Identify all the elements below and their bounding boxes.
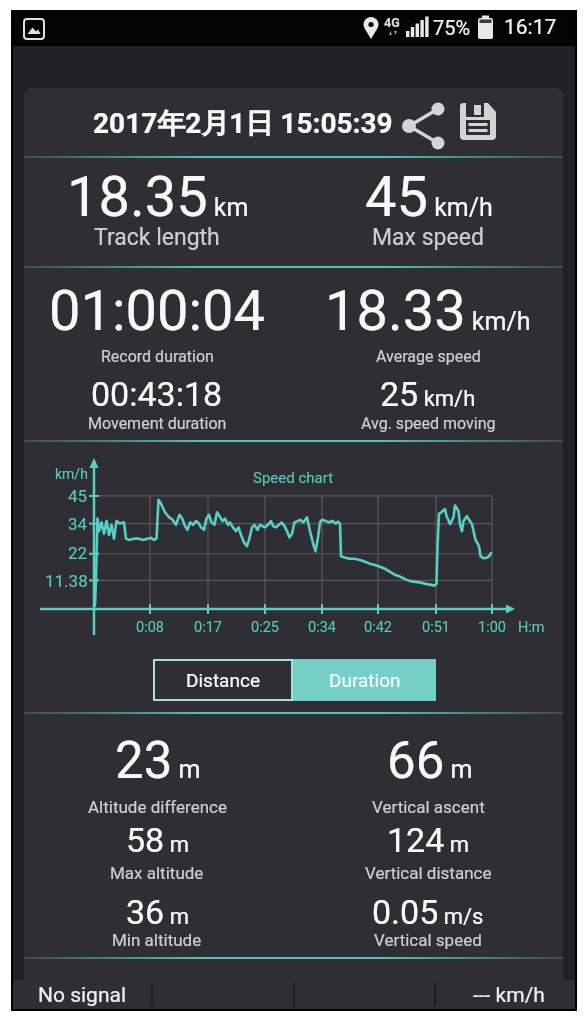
staticText: Distance <box>186 669 260 691</box>
staticText: 00:43:18 <box>91 374 223 414</box>
staticText: H:m <box>518 619 545 636</box>
staticText: --- km/h <box>473 983 545 1008</box>
staticText: 0:08 <box>136 619 164 636</box>
staticText: 1:00 <box>478 619 506 636</box>
staticText: Vertical distance <box>365 863 492 883</box>
staticText: 45 km/h <box>365 164 493 230</box>
staticText: Avg. speed moving <box>361 414 496 433</box>
staticText: 25 km/h <box>380 374 476 414</box>
staticText: 16:17 <box>504 15 557 40</box>
staticText: 0.05 m/s <box>372 892 484 932</box>
staticText: 0:34 <box>308 619 336 636</box>
staticText: 75% <box>433 16 471 39</box>
staticText: 34 <box>68 514 88 534</box>
staticText: km/h <box>55 466 88 482</box>
staticText: 2017年2月1日 15:05:39 <box>93 106 393 141</box>
staticText: No signal <box>38 983 127 1008</box>
staticText: 11.38 <box>45 571 88 591</box>
staticText: Record duration <box>101 347 214 366</box>
staticText: Movement duration <box>88 414 227 433</box>
staticText: 18.33 km/h <box>325 278 531 344</box>
staticText: Speed chart <box>253 469 334 487</box>
staticText: 23 m <box>115 731 201 791</box>
button[interactable]: Duration <box>293 659 436 701</box>
staticText: 36 m <box>126 892 189 932</box>
staticText: 01:00:04 <box>49 278 265 344</box>
button[interactable] <box>398 98 450 154</box>
staticText: 45 <box>68 486 88 506</box>
staticText: 58 m <box>126 820 189 860</box>
staticText: Altitude difference <box>88 797 227 817</box>
button[interactable] <box>458 100 500 142</box>
staticText: 0:25 <box>251 619 279 636</box>
staticText: Min altitude <box>112 930 202 950</box>
staticText: 18.35 km <box>67 164 249 230</box>
button[interactable]: Distance <box>153 659 293 701</box>
staticText: 22 <box>68 543 88 563</box>
staticText: 4G <box>384 15 400 30</box>
staticText: 66 m <box>387 731 473 791</box>
staticText: Vertical ascent <box>372 797 485 817</box>
staticText: Max altitude <box>110 863 204 883</box>
staticText: Duration <box>329 669 401 691</box>
staticText: 0:17 <box>194 619 222 636</box>
staticText: Average speed <box>376 347 481 366</box>
staticText: 0:42 <box>364 619 392 636</box>
staticText: Track length <box>94 224 220 251</box>
staticText: 0:51 <box>422 619 450 636</box>
staticText: 124 m <box>387 820 470 860</box>
staticText: Max speed <box>372 224 484 251</box>
staticText: Vertical speed <box>374 930 482 950</box>
